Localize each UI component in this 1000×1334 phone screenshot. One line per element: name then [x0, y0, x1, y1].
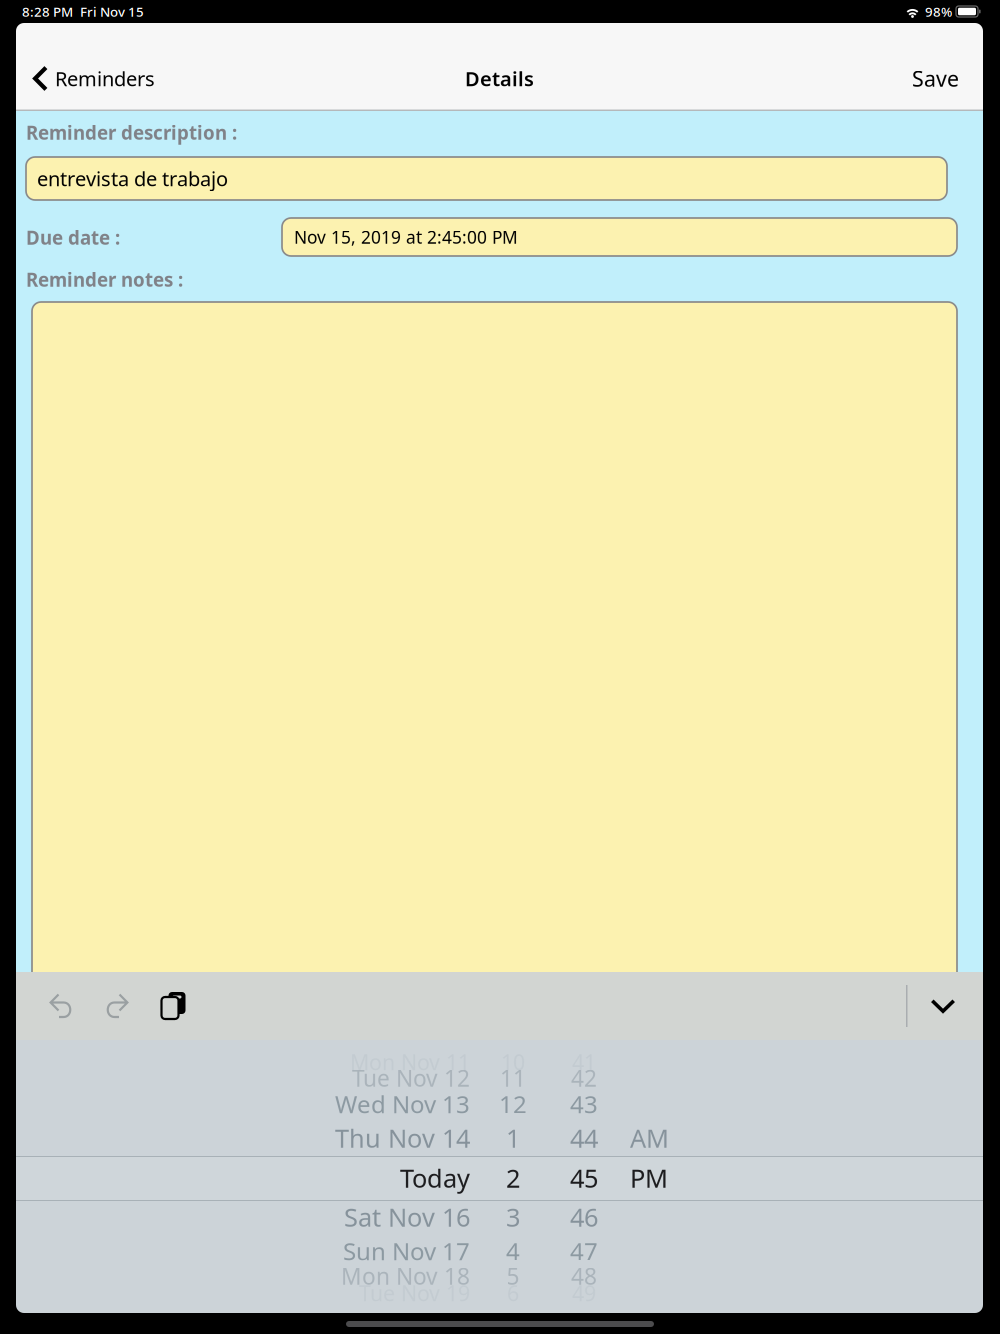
staticText: 41 — [572, 1048, 596, 1076]
staticText: Details — [465, 65, 534, 92]
staticText: Sun Nov 17 — [343, 1235, 470, 1267]
staticText: 11 — [500, 1063, 526, 1093]
button[interactable]: Reminders — [26, 46, 162, 111]
staticText: Today — [400, 1161, 470, 1195]
staticText: 47 — [570, 1235, 598, 1267]
staticText: Reminder description : — [26, 120, 237, 145]
button[interactable]: Reminder notes — [32, 302, 957, 982]
staticText: 42 — [571, 1063, 597, 1093]
staticText: Wed Nov 13 — [335, 1088, 470, 1120]
staticText: 3 — [506, 1200, 520, 1234]
staticText: 10 — [501, 1048, 525, 1076]
staticText: Reminders — [55, 65, 155, 92]
button[interactable]: Hide keyboard — [913, 972, 973, 1040]
staticText: 45 — [570, 1161, 598, 1195]
staticText: Save — [912, 64, 959, 93]
staticText: Thu Nov 14 — [335, 1121, 470, 1155]
staticText: 12 — [499, 1088, 527, 1120]
staticText: 8:28 PM — [22, 3, 73, 20]
staticText: 6 — [507, 1279, 519, 1307]
staticText: 4 — [506, 1235, 520, 1267]
staticText: Tue Nov 12 — [352, 1063, 470, 1093]
staticText: 5 — [506, 1261, 519, 1291]
button[interactable]: Nov 15, 2019 at 2:45:00 PM — [282, 218, 957, 256]
staticText: 98% — [925, 3, 952, 20]
staticText: Nov 15, 2019 at 2:45:00 PM — [294, 225, 518, 248]
staticText: Reminder notes : — [26, 267, 183, 292]
staticText: 44 — [570, 1121, 598, 1155]
staticText: Mon Nov 18 — [341, 1261, 470, 1291]
button[interactable]: Undo — [33, 972, 89, 1040]
button[interactable]: entrevista de trabajo — [26, 157, 947, 200]
button[interactable]: Save — [905, 46, 966, 111]
button[interactable]: Paste — [146, 972, 202, 1040]
staticText: 48 — [571, 1261, 597, 1291]
staticText: entrevista de trabajo — [37, 165, 228, 192]
button[interactable]: Redo — [89, 972, 145, 1040]
staticText: Mon Nov 11 — [350, 1048, 470, 1076]
staticText: 43 — [570, 1088, 598, 1120]
staticText: PM — [630, 1161, 668, 1195]
staticText: Fri Nov 15 — [80, 3, 144, 20]
staticText: 1 — [506, 1121, 520, 1155]
staticText: 49 — [572, 1279, 596, 1307]
staticText: 46 — [570, 1200, 598, 1234]
staticText: Due date : — [26, 225, 120, 250]
staticText: AM — [630, 1121, 669, 1155]
staticText: 2 — [506, 1161, 520, 1195]
staticText: Sat Nov 16 — [344, 1200, 470, 1234]
staticText: Tue Nov 19 — [359, 1279, 470, 1307]
